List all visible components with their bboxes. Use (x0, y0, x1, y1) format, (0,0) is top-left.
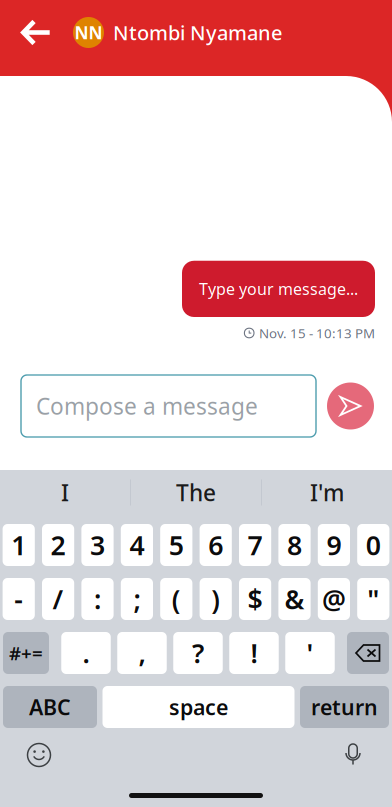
staticText: ! (250, 635, 257, 671)
button[interactable]: space (102, 686, 294, 728)
button[interactable]: The (131, 470, 261, 515)
button[interactable]: ' (285, 632, 335, 674)
staticText: 6 (208, 527, 223, 563)
staticText: space (169, 693, 228, 721)
staticText: 7 (248, 527, 263, 563)
staticText: , (138, 635, 145, 671)
staticText: Nov. 15 - 10:13 PM (259, 324, 375, 342)
button[interactable]: ? (173, 632, 223, 674)
button[interactable]: Emoji (17, 736, 61, 774)
button[interactable]: / (42, 578, 74, 620)
button[interactable]: 9 (318, 524, 350, 566)
staticText: " (367, 581, 379, 617)
button[interactable]: 0 (357, 524, 389, 566)
button[interactable]: 2 (42, 524, 74, 566)
button[interactable]: Send (327, 382, 374, 429)
staticText: ) (211, 581, 220, 617)
button[interactable]: 4 (121, 524, 153, 566)
button[interactable]: I'm (262, 470, 392, 515)
staticText: Compose a message (36, 391, 258, 421)
button[interactable]: #+= (3, 632, 49, 674)
button[interactable]: . (61, 632, 111, 674)
staticText: $ (248, 581, 263, 617)
button[interactable]: & (278, 578, 311, 620)
button[interactable]: 3 (81, 524, 114, 566)
button[interactable]: @ (318, 578, 350, 620)
button[interactable]: : (81, 578, 114, 620)
staticText: I'm (310, 477, 344, 507)
button[interactable]: 7 (239, 524, 271, 566)
button[interactable]: I (0, 470, 130, 515)
button[interactable]: ( (160, 578, 192, 620)
button[interactable]: Delete (347, 632, 389, 674)
button[interactable]: 1 (3, 524, 35, 566)
button[interactable]: ) (200, 578, 232, 620)
staticText: 4 (129, 527, 144, 563)
staticText: & (284, 581, 304, 617)
staticText: 8 (287, 527, 302, 563)
staticText: . (82, 635, 89, 671)
staticText: : (94, 581, 101, 617)
staticText: 2 (51, 527, 66, 563)
staticText: 0 (366, 527, 381, 563)
staticText: ' (306, 635, 313, 671)
button[interactable]: return (300, 686, 389, 728)
staticText: 9 (326, 527, 341, 563)
staticText: 1 (11, 527, 26, 563)
button[interactable]: ABC (3, 686, 97, 728)
button[interactable]: Dictate (331, 736, 375, 774)
button[interactable]: " (357, 578, 389, 620)
staticText: 5 (169, 527, 184, 563)
staticText: ? (192, 635, 204, 671)
staticText: Type your message... (199, 278, 358, 299)
staticText: I (61, 477, 69, 507)
button[interactable]: , (117, 632, 167, 674)
button[interactable]: 8 (278, 524, 311, 566)
staticText: The (176, 477, 216, 507)
staticText: ; (133, 581, 140, 617)
button[interactable]: - (3, 578, 35, 620)
staticText: 3 (90, 527, 105, 563)
button[interactable]: 5 (160, 524, 192, 566)
staticText: / (53, 581, 64, 617)
button[interactable]: $ (239, 578, 271, 620)
staticText: ( (172, 581, 181, 617)
staticText: NN (74, 21, 102, 44)
button[interactable]: Back (0, 8, 52, 56)
staticText: ABC (29, 693, 71, 721)
button[interactable]: 6 (200, 524, 232, 566)
staticText: #+= (9, 641, 43, 665)
staticText: return (311, 693, 378, 721)
staticText: Ntombi Nyamane (113, 19, 282, 46)
button[interactable]: ! (229, 632, 279, 674)
staticText: @ (322, 581, 346, 617)
button[interactable]: ; (121, 578, 153, 620)
staticText: - (14, 581, 23, 617)
